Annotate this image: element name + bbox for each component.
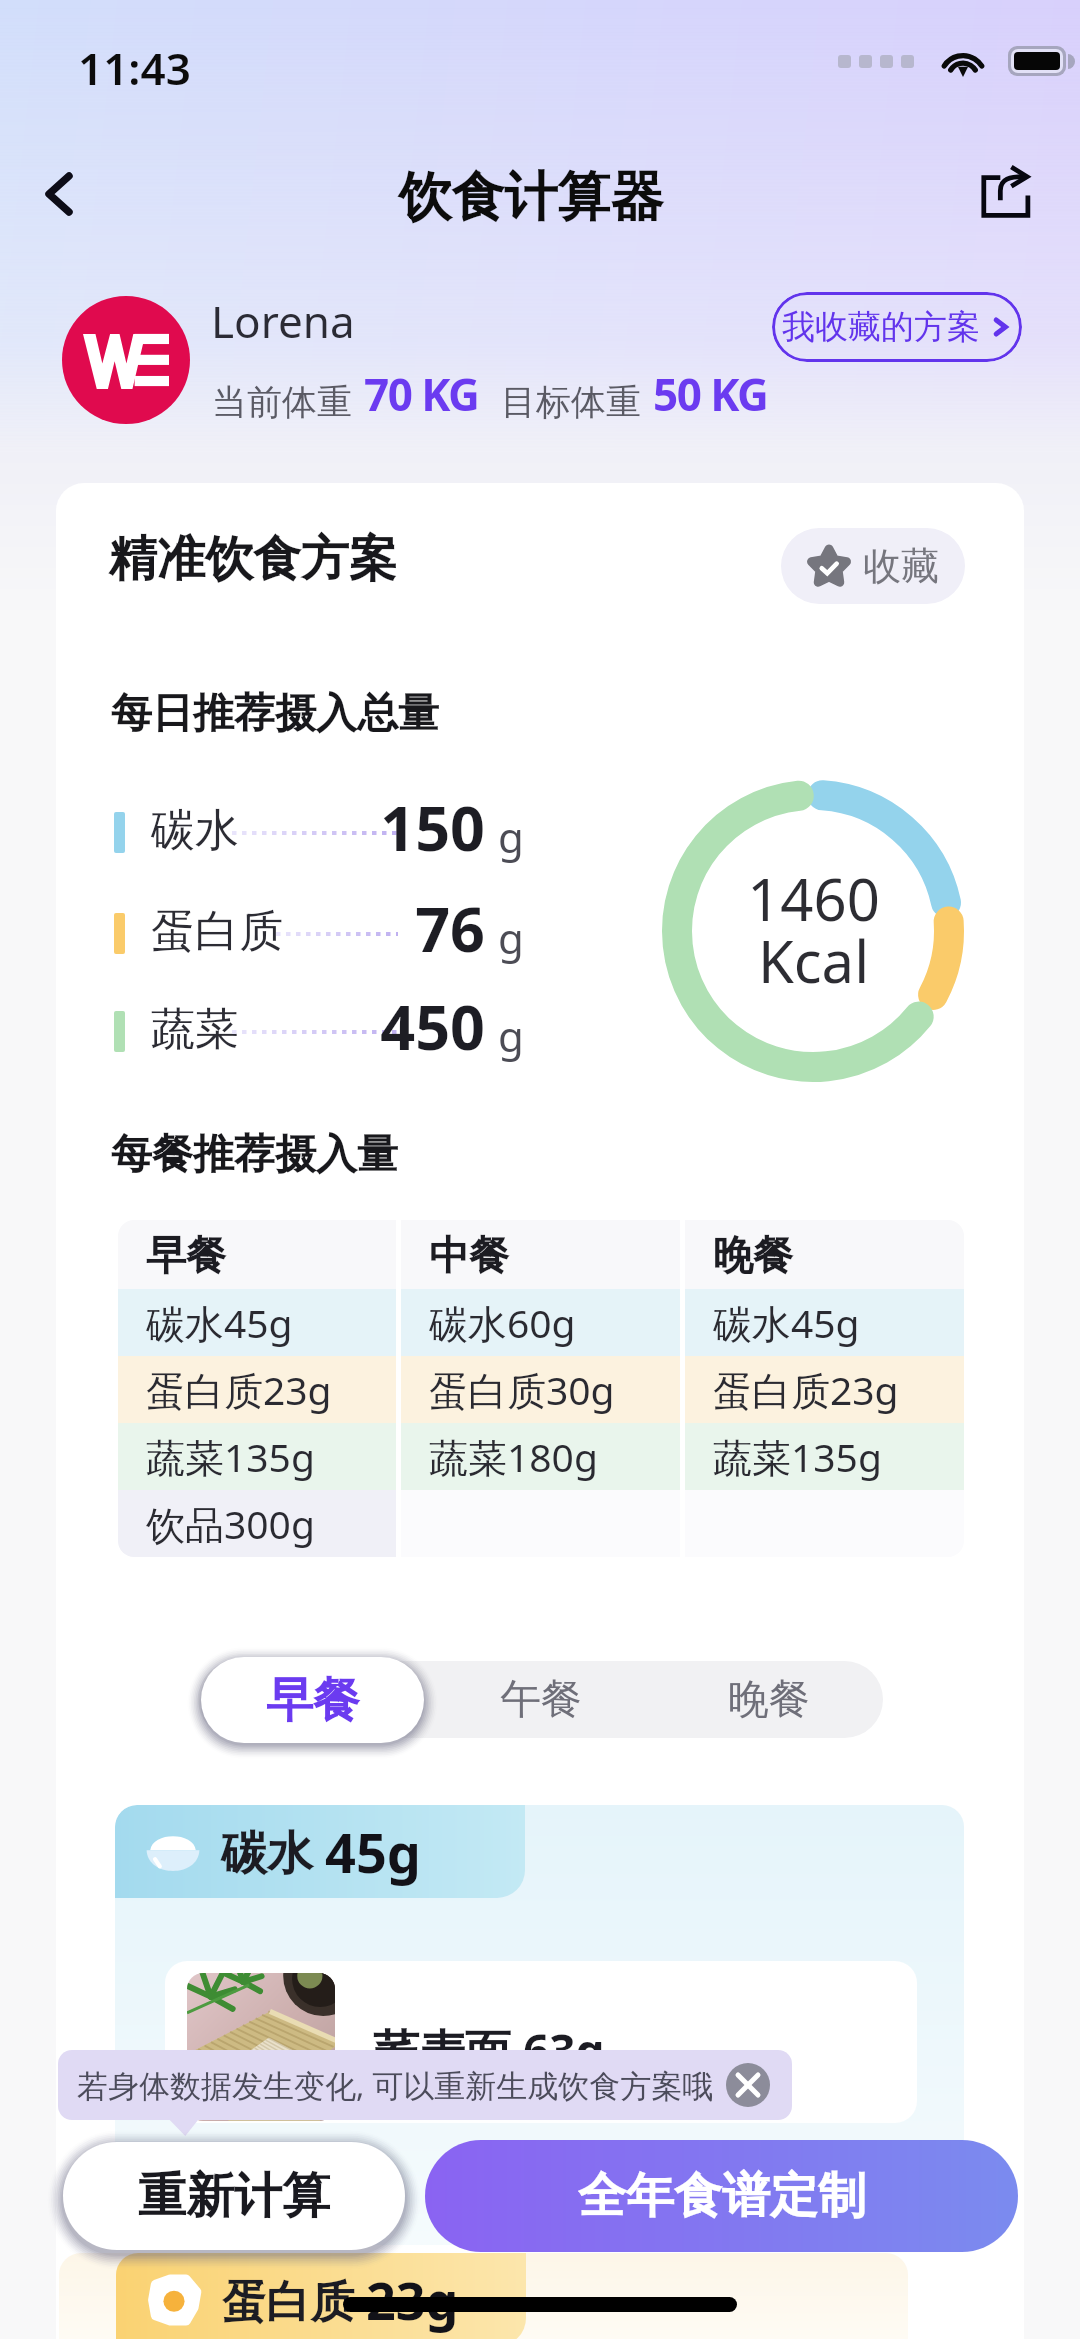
- staticText: Lorena: [211, 291, 355, 351]
- staticText: 蛋白质23g: [146, 1363, 332, 1416]
- staticText: 1460 Kcal: [747, 859, 880, 1000]
- staticText: 碳水: [151, 803, 239, 858]
- staticText: 饮品300g: [146, 1497, 315, 1550]
- staticText: 饮食计算器: [0, 164, 1071, 231]
- staticText: 蔬菜135g: [146, 1430, 315, 1483]
- button[interactable]: 重新计算: [63, 2142, 405, 2250]
- button[interactable]: [198, 1661, 427, 1738]
- staticText: 全年食谱定制: [578, 2166, 866, 2226]
- staticText: 重新计算: [138, 2166, 330, 2226]
- staticText: 45g: [325, 1815, 421, 1889]
- staticText: 若身体数据发生变化, 可以重新生成饮食方案哦: [77, 2064, 737, 2106]
- staticText: 晚餐: [728, 1674, 810, 1726]
- staticText: 早餐: [146, 1230, 226, 1280]
- staticText: 450: [285, 985, 485, 1068]
- staticText: 早餐: [266, 1671, 360, 1730]
- staticText: 碳水60g: [429, 1296, 576, 1349]
- staticText: 70 KG: [364, 364, 479, 424]
- staticText: 蔬菜: [151, 1002, 239, 1057]
- staticText: 精准饮食方案: [109, 529, 397, 589]
- staticText: 当前体重: [212, 380, 352, 424]
- button[interactable]: 早餐: [201, 1657, 424, 1743]
- button[interactable]: Back: [16, 152, 100, 236]
- staticText: g: [498, 1007, 524, 1064]
- staticText: 蔬菜180g: [429, 1430, 598, 1483]
- staticText: 23g: [366, 2264, 459, 2335]
- staticText: 晚餐: [713, 1230, 793, 1280]
- staticText: 目标体重: [501, 380, 641, 424]
- staticText: 蛋白质: [151, 904, 283, 959]
- staticText: 蛋白质: [222, 2270, 366, 2330]
- button[interactable]: 午餐: [427, 1661, 655, 1738]
- staticText: 午餐: [500, 1674, 582, 1726]
- staticText: 碳水: [221, 1820, 325, 1883]
- button[interactable]: 我收藏的方案: [772, 292, 1022, 362]
- staticText: 每日推荐摄入总量: [111, 688, 439, 740]
- staticText: 荞麦面 63g: [373, 2019, 605, 2082]
- button[interactable]: 全年食谱定制: [425, 2140, 1018, 2252]
- button[interactable]: 晚餐: [655, 1661, 883, 1738]
- staticText: 150: [285, 786, 485, 869]
- button[interactable]: 荞麦面 63g: [165, 1961, 917, 2123]
- button[interactable]: Share: [965, 150, 1049, 234]
- staticText: g: [498, 808, 524, 865]
- staticText: 碳水45g: [146, 1296, 293, 1349]
- staticText: 76: [285, 887, 485, 970]
- staticText: 蔬菜135g: [713, 1430, 882, 1483]
- staticText: 收藏: [863, 542, 939, 590]
- staticText: 每餐推荐摄入量: [111, 1129, 398, 1181]
- staticText: 中餐: [429, 1230, 509, 1280]
- staticText: 蛋白质30g: [429, 1363, 615, 1416]
- staticText: 蛋白质23g: [713, 1363, 899, 1416]
- button[interactable]: 收藏: [781, 528, 965, 604]
- staticText: 50 KG: [653, 364, 768, 424]
- staticText: 11:43: [78, 38, 191, 98]
- button[interactable]: Close: [726, 2063, 770, 2107]
- staticText: 碳水45g: [713, 1296, 860, 1349]
- staticText: g: [498, 909, 524, 966]
- staticText: 我收藏的方案: [782, 306, 980, 348]
